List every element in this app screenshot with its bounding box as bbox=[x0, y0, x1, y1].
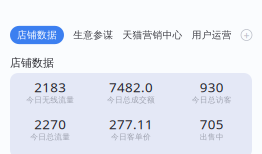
staticText: 天猫营销中心 bbox=[122, 29, 182, 41]
button[interactable]: 店铺数据 bbox=[10, 26, 64, 44]
staticText: + bbox=[243, 28, 249, 42]
staticText: 今日总成交额 bbox=[107, 95, 155, 105]
button[interactable]: 生意参谋 bbox=[73, 26, 113, 44]
staticText: 7482.0 bbox=[109, 78, 153, 96]
button[interactable]: 用户运营 bbox=[192, 26, 232, 44]
staticText: 生意参谋 bbox=[73, 29, 113, 41]
button[interactable]: 天猫营销中心 bbox=[122, 26, 182, 44]
staticText: 今日总访客 bbox=[192, 95, 232, 105]
staticText: 2270 bbox=[34, 115, 66, 133]
staticText: 277.11 bbox=[109, 115, 153, 133]
staticText: 今日客单价 bbox=[111, 132, 151, 142]
staticText: 2183 bbox=[34, 78, 66, 96]
staticText: 今日无线流量 bbox=[26, 95, 74, 105]
staticText: 705 bbox=[200, 115, 224, 133]
staticText: 出售中 bbox=[200, 132, 224, 142]
staticText: 今日总流量 bbox=[30, 132, 70, 142]
staticText: 店铺数据 bbox=[10, 56, 54, 70]
staticText: 930 bbox=[200, 78, 224, 96]
staticText: 用户运营 bbox=[192, 29, 232, 41]
button[interactable]: Add tab bbox=[241, 29, 252, 40]
staticText: 店铺数据 bbox=[17, 29, 57, 41]
